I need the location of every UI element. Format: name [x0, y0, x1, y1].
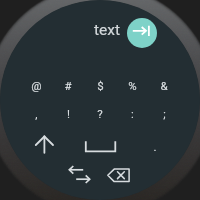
- button[interactable]: Backspace: [105, 166, 132, 186]
- button[interactable]: %: [118, 71, 146, 99]
- button[interactable]: text: [91, 21, 124, 39]
- staticText: @: [31, 79, 42, 92]
- button[interactable]: Space: [83, 138, 118, 154]
- button[interactable]: .: [141, 132, 169, 160]
- button[interactable]: @: [22, 71, 50, 99]
- staticText: ?: [97, 107, 103, 120]
- button[interactable]: $: [86, 71, 114, 99]
- button[interactable]: Shift: [33, 133, 56, 156]
- button[interactable]: Switch keyboard: [66, 164, 92, 186]
- button[interactable]: &: [150, 71, 178, 99]
- button[interactable]: Next field: [127, 18, 157, 48]
- staticText: ,: [35, 107, 38, 120]
- button[interactable]: :: [118, 99, 146, 127]
- button[interactable]: #: [54, 71, 82, 99]
- staticText: ;: [163, 107, 166, 120]
- button[interactable]: !: [54, 99, 82, 127]
- staticText: %: [128, 79, 137, 92]
- staticText: &: [160, 79, 168, 92]
- staticText: !: [67, 107, 70, 120]
- staticText: #: [64, 79, 72, 92]
- button[interactable]: ;: [150, 99, 178, 127]
- staticText: $: [97, 79, 104, 92]
- staticText: :: [131, 107, 134, 120]
- button[interactable]: ?: [86, 99, 114, 127]
- staticText: .: [153, 140, 157, 153]
- button[interactable]: ,: [22, 99, 50, 127]
- staticText: text: [94, 21, 121, 39]
